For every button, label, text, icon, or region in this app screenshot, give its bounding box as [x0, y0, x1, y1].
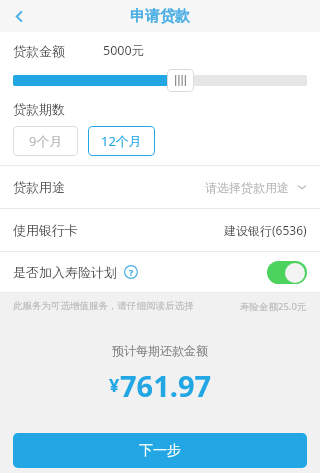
staticText: 此服务为可选增值服务，请仔细阅读后选择 [13, 300, 194, 312]
staticText: 761.97 [120, 366, 212, 405]
staticText: 贷款期数 [13, 101, 65, 117]
staticText: 12个月 [101, 132, 142, 150]
staticText: 使用银行卡 [13, 222, 78, 238]
button[interactable]: Amount slider [167, 69, 194, 92]
staticText: 请选择贷款用途 [205, 180, 289, 195]
staticText: 是否加入寿险计划 [13, 264, 117, 280]
staticText: 预计每期还款金额 [112, 343, 208, 358]
staticText: 下一步 [139, 442, 181, 460]
staticText: 9个月 [29, 132, 63, 150]
staticText: 贷款用途 [13, 179, 65, 195]
staticText: 5000元 [103, 42, 145, 59]
staticText: 寿险金额25.0元 [240, 300, 307, 313]
staticText: ? [129, 266, 134, 278]
button[interactable]: 9个月 [13, 126, 78, 156]
button[interactable]: 下一步 [13, 433, 307, 468]
button[interactable]: Insurance toggle [267, 261, 307, 284]
staticText: 申请贷款 [130, 7, 190, 26]
button[interactable]: 使用银行卡 [0, 209, 320, 251]
staticText: ¥ [109, 373, 120, 398]
button[interactable]: 贷款用途 [0, 166, 320, 208]
button[interactable]: Help [123, 264, 139, 280]
button[interactable]: Back [4, 1, 34, 31]
button[interactable]: 12个月 [88, 126, 155, 156]
staticText: 贷款金额 [13, 43, 65, 59]
staticText: 建设银行(6536) [224, 222, 307, 238]
